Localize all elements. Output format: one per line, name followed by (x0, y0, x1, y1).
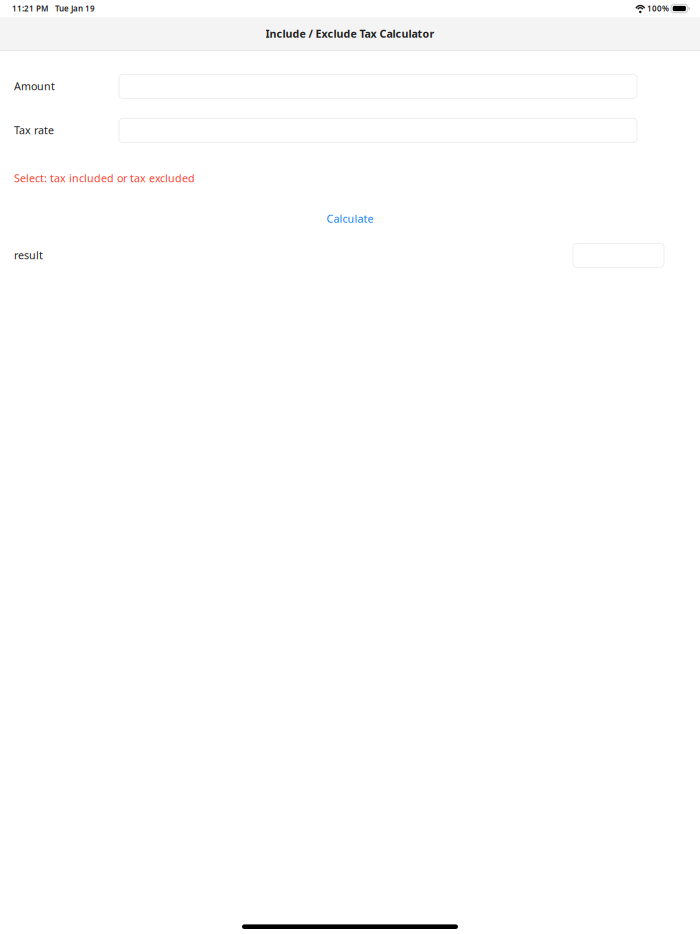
staticText: result (14, 248, 43, 262)
staticText: Tue Jan 19 (55, 3, 95, 14)
button[interactable]: Amount (119, 74, 637, 98)
staticText: Tax rate (14, 123, 54, 137)
staticText: Calculate (326, 211, 373, 226)
button[interactable]: Tax rate (119, 118, 637, 142)
button[interactable]: Calculate (326, 212, 374, 225)
staticText: Amount (14, 79, 55, 93)
staticText: Include / Exclude Tax Calculator (265, 26, 434, 41)
button[interactable]: Result (573, 243, 664, 267)
staticText: Select: tax included or tax excluded (14, 171, 195, 185)
staticText: 100% (647, 3, 669, 14)
staticText: 11:21 PM (12, 3, 48, 14)
